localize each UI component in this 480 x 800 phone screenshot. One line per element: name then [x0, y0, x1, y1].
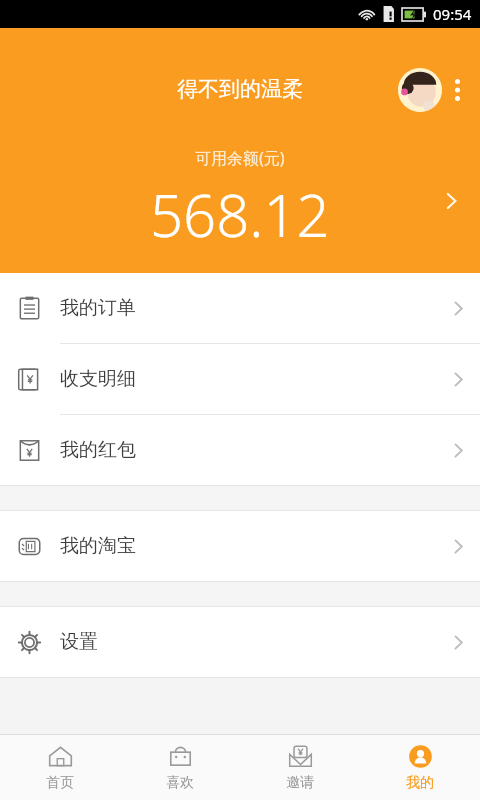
- staticText: 首页: [46, 774, 74, 792]
- button[interactable]: 首页: [0, 735, 120, 800]
- staticText: 我的: [406, 774, 434, 792]
- button[interactable]: 喜欢: [120, 735, 240, 800]
- button[interactable]: 我的淘宝: [0, 511, 480, 581]
- staticText: 可用余额(元): [195, 147, 285, 169]
- staticText: 09:54: [433, 4, 472, 24]
- staticText: 收支明细: [60, 367, 136, 391]
- button[interactable]: More options: [442, 68, 472, 112]
- button[interactable]: 我的红包: [0, 415, 480, 485]
- button[interactable]: 邀请: [240, 735, 360, 800]
- staticText: 我的淘宝: [60, 534, 136, 558]
- button[interactable]: 我的订单: [0, 273, 480, 343]
- button[interactable]: 收支明细: [0, 344, 480, 414]
- button[interactable]: 设置: [0, 607, 480, 677]
- staticText: 我的红包: [60, 438, 136, 462]
- button[interactable]: 可用余额(元): [0, 128, 480, 273]
- staticText: 设置: [60, 630, 98, 654]
- staticText: 568.12: [150, 175, 330, 254]
- staticText: 我的订单: [60, 296, 136, 320]
- staticText: 邀请: [286, 774, 314, 792]
- button[interactable]: 我的: [360, 735, 480, 800]
- staticText: 喜欢: [166, 774, 194, 792]
- staticText: 得不到的温柔: [177, 76, 303, 102]
- button[interactable]: Profile photo: [398, 68, 442, 112]
